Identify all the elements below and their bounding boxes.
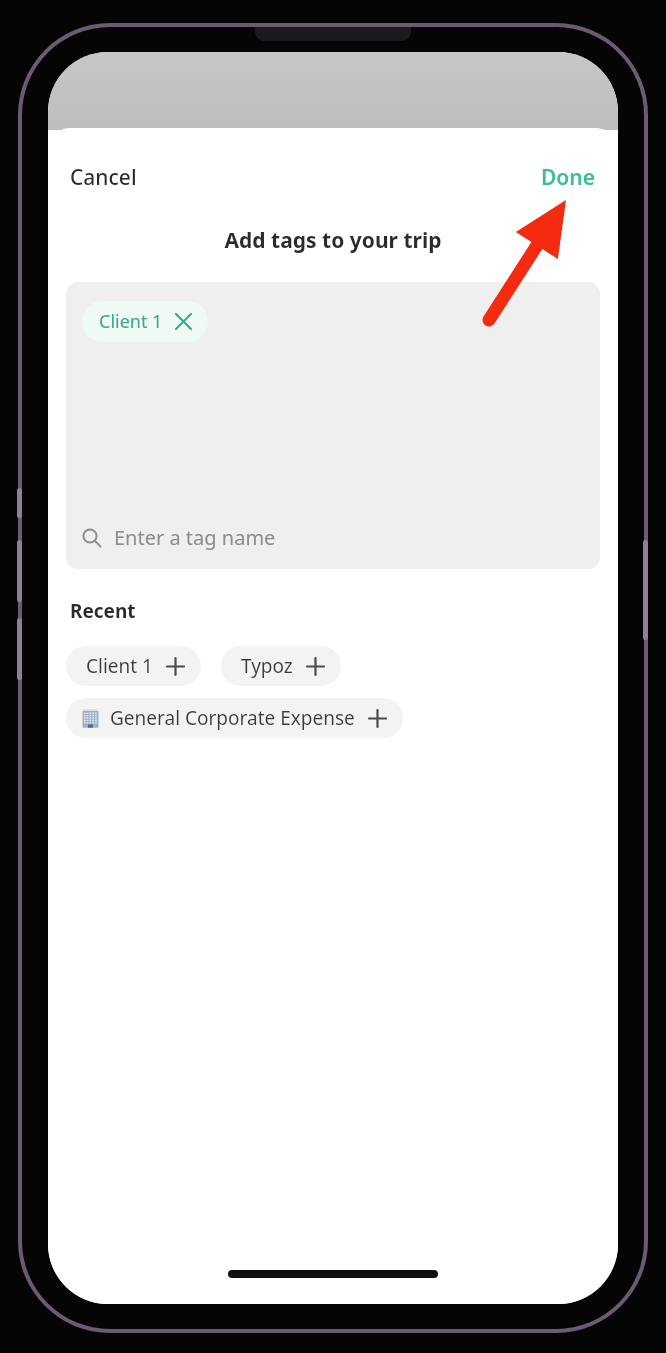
staticText: Client 1 bbox=[99, 309, 163, 334]
staticText: Client 1 bbox=[86, 653, 153, 679]
staticText: Enter a tag name bbox=[114, 524, 276, 551]
button[interactable]: Done bbox=[537, 159, 600, 196]
staticText: Add tags to your trip bbox=[48, 226, 618, 255]
staticText: Cancel bbox=[70, 163, 137, 192]
button[interactable]: Cancel bbox=[66, 159, 141, 196]
button[interactable]: Client 1 bbox=[66, 646, 201, 686]
other: Add tag bbox=[167, 658, 184, 675]
button[interactable]: Client 1 bbox=[82, 301, 208, 342]
staticText: General Corporate Expense bbox=[110, 705, 355, 731]
staticText: Recent bbox=[70, 598, 136, 624]
staticText: Done bbox=[541, 163, 596, 192]
other: Add tag bbox=[369, 710, 386, 727]
other: Add tag bbox=[307, 658, 324, 675]
other: Remove tag bbox=[176, 314, 191, 329]
staticText: Typoz bbox=[241, 653, 293, 679]
button[interactable]: Client 1 bbox=[66, 282, 600, 569]
button[interactable]: General Corporate Expense bbox=[66, 698, 403, 738]
other: Search bbox=[82, 528, 102, 548]
button[interactable]: Typoz bbox=[221, 646, 341, 686]
